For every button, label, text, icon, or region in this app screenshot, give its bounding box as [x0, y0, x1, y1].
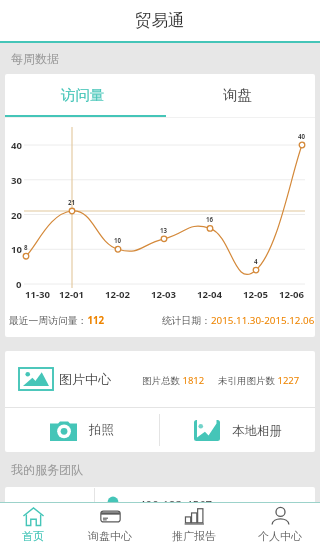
button[interactable]: 拍照 — [5, 408, 159, 452]
other: Home — [23, 506, 44, 527]
button[interactable]: Home — [0, 503, 69, 545]
staticText: 图片总数 1812 — [142, 374, 205, 387]
staticText: 未引用图片数 1227 — [218, 374, 300, 387]
staticText: 贸易通 — [135, 10, 185, 31]
staticText: 12-03 — [151, 288, 177, 301]
staticText: 11-30 — [25, 288, 51, 301]
staticText: 12-04 — [197, 288, 223, 301]
staticText: 询盘 — [223, 86, 252, 104]
staticText: 12-02 — [105, 288, 131, 301]
staticText: 首页 — [22, 529, 44, 543]
staticText: 8 — [24, 243, 28, 251]
staticText: 16 — [206, 215, 214, 223]
button[interactable]: Promotion report — [158, 503, 230, 545]
staticText: 12-01 — [59, 288, 85, 301]
button[interactable]: 本地相册 — [160, 408, 315, 452]
staticText: 我的服务团队 — [11, 462, 83, 477]
staticText: 拍照 — [89, 422, 114, 438]
staticText: 个人中心 — [258, 529, 302, 543]
button[interactable]: 400-123-4567 — [5, 487, 315, 531]
staticText: 最近一周访问量：112 — [9, 314, 105, 327]
button[interactable]: 图片中心 — [5, 351, 315, 407]
staticText: 12-06 — [279, 288, 305, 301]
other: Promotion report — [184, 506, 205, 527]
staticText: 4 — [254, 257, 258, 265]
button[interactable]: 询盘 — [160, 74, 315, 115]
staticText: 12-05 — [243, 288, 269, 301]
staticText: 访问量 — [61, 86, 105, 104]
button[interactable]: 访问量 — [5, 74, 160, 115]
staticText: 400-123-4567 — [139, 497, 213, 513]
staticText: 推广报告 — [172, 529, 216, 543]
staticText: 13 — [160, 226, 168, 234]
staticText: 图片中心 — [59, 371, 111, 387]
staticText: 40 — [298, 132, 306, 140]
staticText: 20 — [11, 209, 22, 222]
staticText: 30 — [11, 174, 22, 187]
button[interactable]: Inquiry center — [74, 503, 146, 545]
staticText: 每周数据 — [11, 51, 59, 66]
staticText: 统计日期：2015.11.30-2015.12.06 — [162, 314, 315, 327]
other: Personal center — [270, 506, 291, 527]
staticText: 21 — [68, 198, 76, 206]
staticText: 10 — [11, 243, 22, 256]
staticText: 0 — [16, 278, 22, 291]
button[interactable]: Personal center — [244, 503, 316, 545]
other: Inquiry center — [100, 506, 121, 527]
staticText: 40 — [11, 139, 22, 152]
staticText: 本地相册 — [232, 423, 282, 439]
staticText: 询盘中心 — [88, 529, 132, 543]
staticText: 10 — [114, 236, 122, 244]
